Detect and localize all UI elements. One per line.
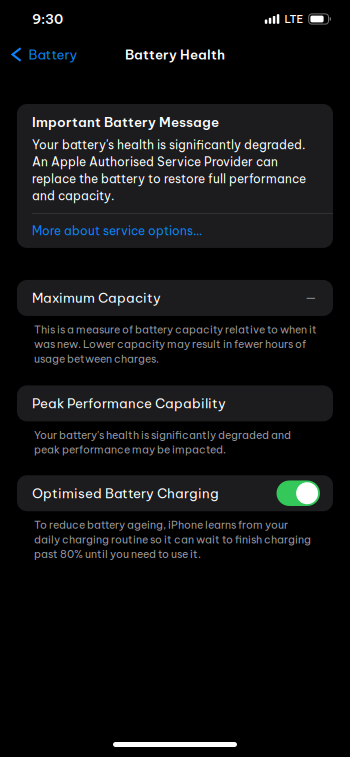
button[interactable]: Maximum Capacity (17, 280, 333, 316)
staticText: — (305, 290, 317, 306)
staticText: Optimised Battery Charging (32, 485, 219, 501)
staticText: 9:30 (32, 11, 63, 27)
staticText: daily charging routine so it can wait to… (34, 533, 311, 546)
staticText: Battery Health (125, 46, 225, 63)
staticText: Peak Performance Capability (32, 395, 226, 412)
staticText: usage between charges. (34, 352, 159, 365)
staticText: replace the battery to restore full perf… (32, 171, 306, 186)
staticText: More about service options... (32, 223, 202, 238)
button[interactable]: Peak Performance Capability (17, 385, 333, 421)
staticText: An Apple Authorised Service Provider can (32, 154, 278, 169)
staticText: Your battery's health is significantly d… (32, 137, 305, 152)
button[interactable]: Optimised Battery Charging (17, 475, 333, 511)
staticText: To reduce battery ageing, iPhone learns … (34, 518, 288, 531)
staticText: peak performance may be impacted. (34, 443, 226, 456)
staticText: This is a measure of battery capacity re… (34, 323, 317, 336)
staticText: was new. Lower capacity may result in fe… (34, 338, 306, 351)
staticText: Maximum Capacity (32, 290, 161, 306)
staticText: past 80% until you need to use it. (34, 547, 201, 561)
staticText: Battery (29, 46, 78, 63)
staticText: and capacity. (32, 188, 114, 203)
button[interactable]: Battery (0, 39, 88, 70)
staticText: Your battery's health is significantly d… (34, 428, 291, 442)
staticText: LTE (285, 12, 304, 26)
staticText: Important Battery Message (32, 114, 219, 130)
button[interactable]: More about service options... (17, 214, 333, 248)
